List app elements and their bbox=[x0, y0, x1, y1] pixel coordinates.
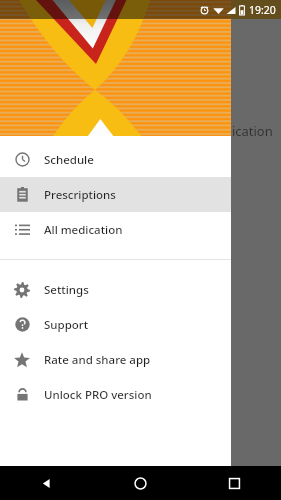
button[interactable]: Settings bbox=[0, 272, 231, 307]
button[interactable]: Unlock PRO version bbox=[0, 377, 231, 412]
staticText: All medication bbox=[186, 122, 273, 140]
button[interactable]: Home bbox=[93, 466, 187, 500]
button[interactable]: All medication bbox=[0, 212, 231, 247]
staticText: Schedule bbox=[44, 152, 94, 168]
button[interactable]: Schedule bbox=[0, 142, 231, 177]
staticText: Settings bbox=[44, 282, 89, 298]
button[interactable]: Support bbox=[0, 307, 231, 342]
staticText: Unlock PRO version bbox=[44, 387, 152, 403]
staticText: Support bbox=[44, 317, 89, 333]
button[interactable]: Recent apps bbox=[187, 466, 281, 500]
staticText: Rate and share app bbox=[44, 352, 151, 368]
button[interactable]: Rate and share app bbox=[0, 342, 231, 377]
staticText: 19:20 bbox=[249, 3, 276, 17]
button[interactable]: Back bbox=[0, 466, 93, 500]
button[interactable]: Prescriptions bbox=[0, 177, 231, 212]
staticText: All medication bbox=[44, 222, 123, 238]
staticText: Prescriptions bbox=[44, 187, 116, 203]
